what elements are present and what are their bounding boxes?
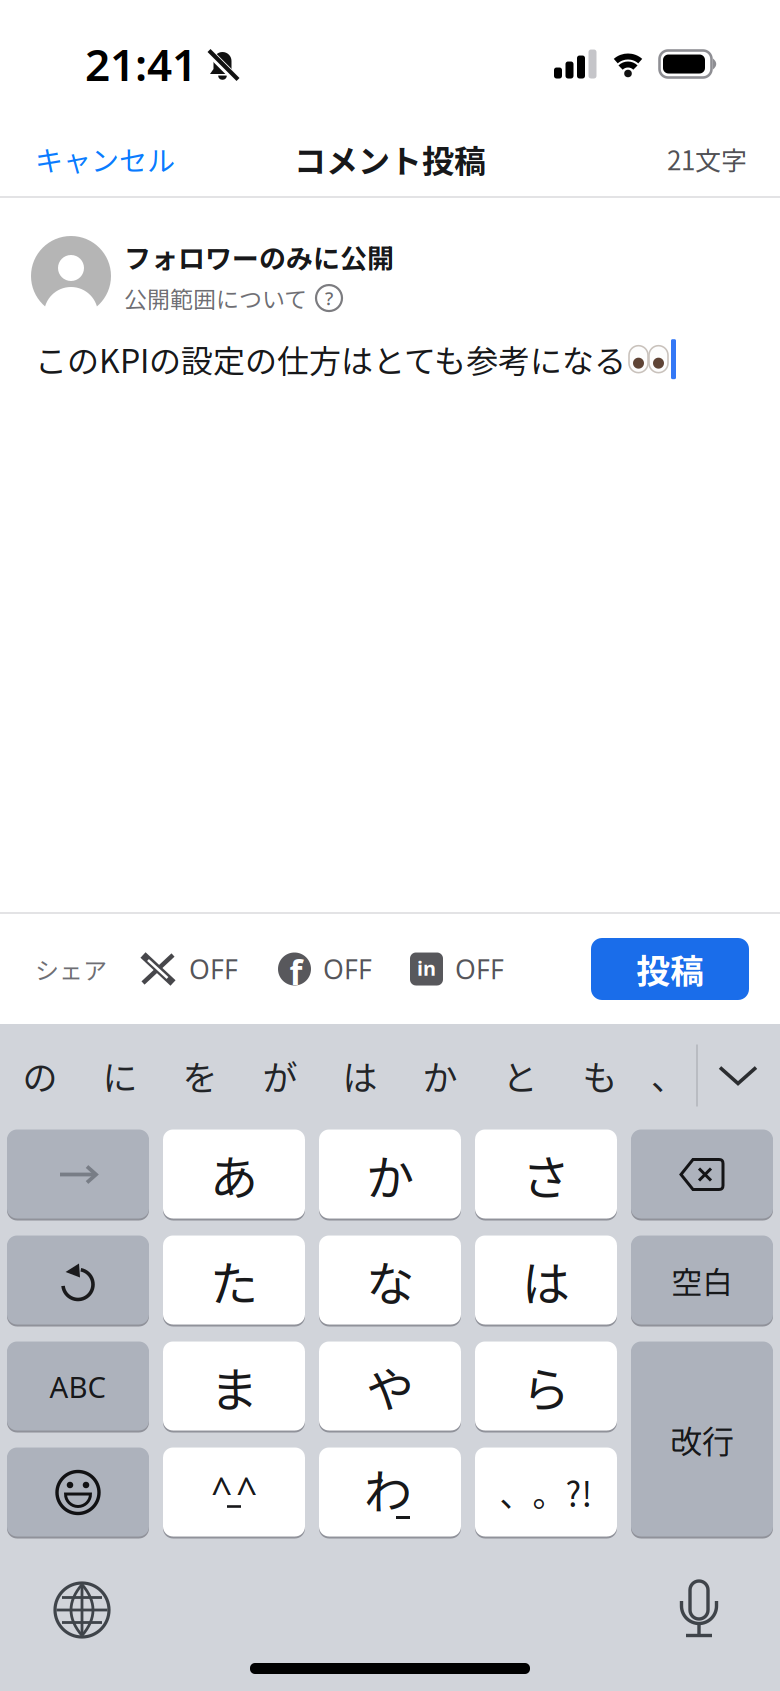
button[interactable]: や: [319, 1342, 461, 1431]
button[interactable]: 公開範囲について: [124, 281, 342, 315]
staticText: 公開範囲について: [124, 281, 307, 315]
staticText: OFF: [323, 951, 372, 987]
staticText: た: [210, 1246, 258, 1315]
staticText: と: [502, 1050, 537, 1101]
button[interactable]: は: [320, 1024, 400, 1127]
button[interactable]: た: [163, 1236, 305, 1325]
staticText: ABC: [49, 1367, 106, 1406]
button[interactable]: ま: [163, 1342, 305, 1431]
button[interactable]: も: [560, 1024, 640, 1127]
button[interactable]: 、: [640, 1024, 696, 1127]
staticText: も: [582, 1050, 617, 1101]
staticText: シェア: [35, 952, 107, 986]
staticText: 改行: [670, 1416, 734, 1463]
button[interactable]: か: [319, 1130, 461, 1219]
button[interactable]: Switch keyboard: [55, 1583, 109, 1637]
button[interactable]: Emoji: [7, 1448, 149, 1537]
staticText: 空白: [671, 1258, 733, 1303]
button[interactable]: f: [278, 951, 372, 987]
staticText: ?: [325, 286, 333, 310]
button[interactable]: 投稿: [591, 938, 749, 1000]
button[interactable]: Hide suggestions: [696, 1024, 780, 1127]
staticText: さ: [522, 1140, 570, 1209]
staticText: 21:41: [85, 35, 197, 93]
staticText: が: [262, 1050, 297, 1101]
button[interactable]: な: [319, 1236, 461, 1325]
button[interactable]: Undo: [7, 1236, 149, 1325]
button[interactable]: が: [240, 1024, 320, 1127]
button[interactable]: と: [480, 1024, 560, 1127]
staticText: フォロワーのみに公開: [124, 237, 394, 276]
button[interactable]: を: [160, 1024, 240, 1127]
button[interactable]: さ: [475, 1130, 617, 1219]
staticText: を: [182, 1050, 217, 1101]
staticText: キャンセル: [35, 139, 175, 179]
staticText: ^: [236, 1466, 257, 1515]
staticText: 投稿: [636, 944, 704, 994]
staticText: か: [422, 1050, 457, 1101]
button[interactable]: Move cursor: [7, 1130, 149, 1219]
staticText: 21文字: [667, 140, 747, 178]
button[interactable]: Dictation: [679, 1581, 719, 1639]
button[interactable]: あ: [163, 1130, 305, 1219]
staticText: は: [342, 1050, 377, 1101]
button[interactable]: in: [410, 951, 504, 987]
button[interactable]: は: [475, 1236, 617, 1325]
button[interactable]: Delete: [631, 1130, 773, 1219]
staticText: わ: [364, 1454, 412, 1523]
staticText: ^: [211, 1466, 232, 1515]
button[interactable]: Kaomoji: [163, 1448, 305, 1537]
button[interactable]: ABC: [7, 1342, 149, 1431]
button[interactable]: 空白: [631, 1236, 773, 1325]
staticText: か: [366, 1140, 414, 1209]
staticText: な: [366, 1246, 414, 1315]
button[interactable]: の: [0, 1024, 80, 1127]
staticText: OFF: [189, 951, 238, 987]
staticText: OFF: [455, 951, 504, 987]
staticText: ら: [522, 1352, 570, 1421]
button[interactable]: 改行: [631, 1342, 773, 1537]
button[interactable]: OFF: [140, 951, 238, 987]
button[interactable]: ら: [475, 1342, 617, 1431]
staticText: このKPIの設定の仕方はとても参考になる: [35, 336, 626, 382]
staticText: 、: [651, 1051, 685, 1100]
staticText: 、。?!: [499, 1469, 592, 1516]
staticText: ま: [210, 1352, 258, 1421]
button[interactable]: 、。?!: [475, 1448, 617, 1537]
staticText: in: [417, 955, 436, 981]
button[interactable]: わ: [319, 1448, 461, 1537]
staticText: に: [102, 1050, 137, 1101]
button[interactable]: キャンセル: [35, 139, 175, 179]
staticText: の: [22, 1050, 57, 1101]
staticText: は: [522, 1246, 570, 1315]
staticText: あ: [210, 1140, 258, 1209]
staticText: f: [289, 950, 302, 994]
button[interactable]: に: [80, 1024, 160, 1127]
button[interactable]: か: [400, 1024, 480, 1127]
staticText: コメント投稿: [294, 136, 486, 182]
staticText: や: [366, 1352, 414, 1421]
